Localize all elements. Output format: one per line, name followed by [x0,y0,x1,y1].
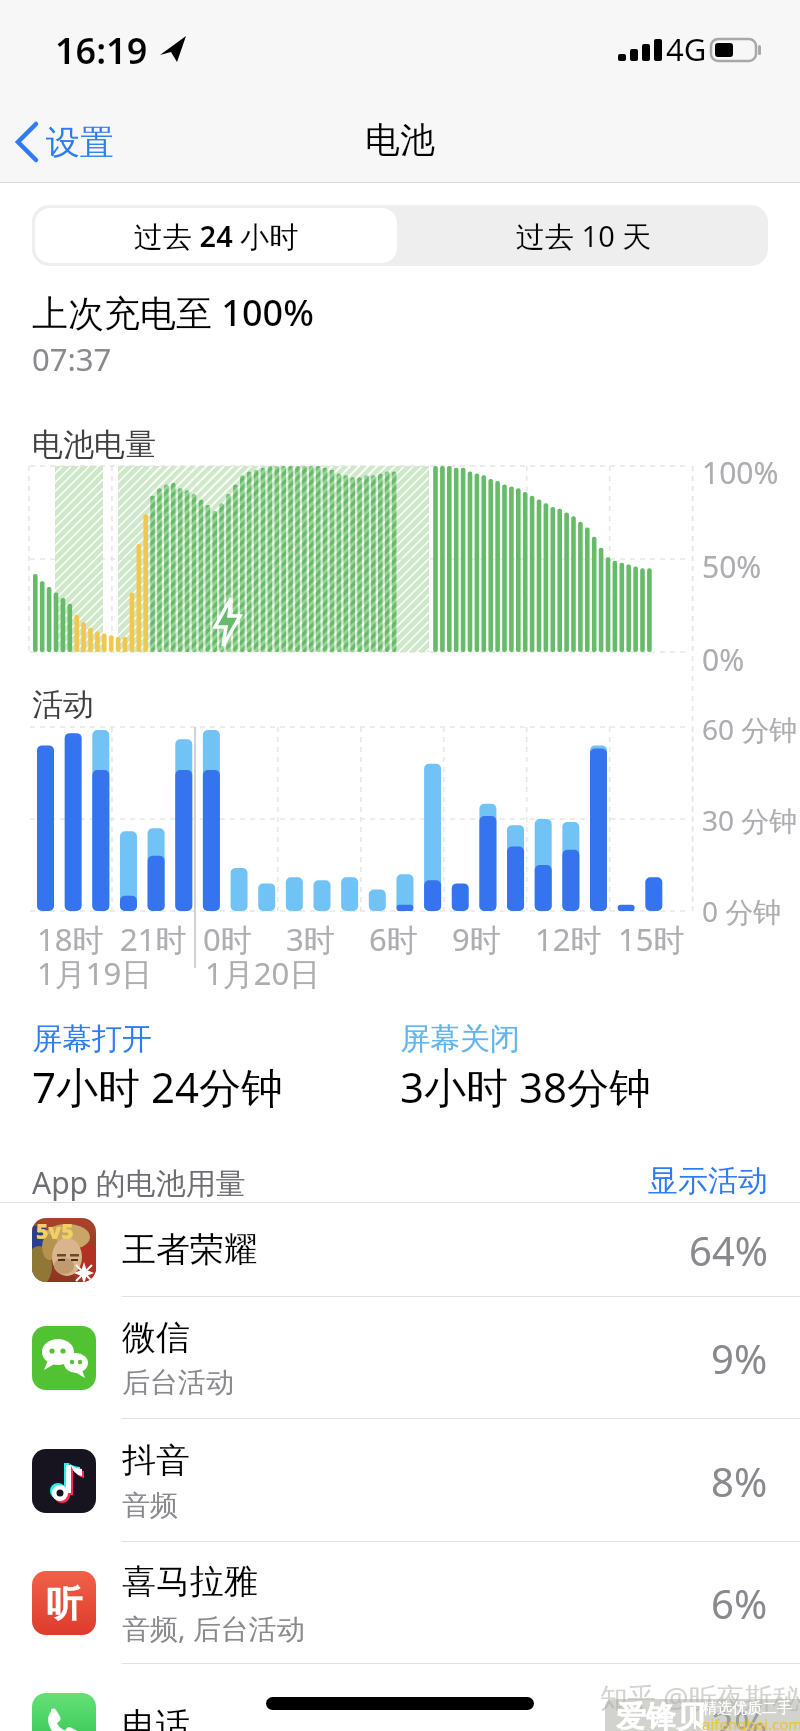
staticText: 3时 [286,918,335,960]
staticText: 60 分钟 [702,710,798,748]
staticText: 21时 [120,918,187,960]
staticText: 4G [666,28,707,70]
staticText: 16:19 [55,26,148,75]
staticText: 07:37 [32,338,112,380]
staticText: 15时 [618,918,685,960]
staticText: 抖音 [122,1439,190,1482]
staticText: 30 分钟 [702,801,798,839]
staticText: 18时 [37,918,104,960]
button[interactable]: 电话 [0,1664,800,1731]
staticText: 6时 [369,918,418,960]
staticText: 微信 [122,1316,190,1359]
staticText: 屏幕关闭 [400,1020,520,1058]
staticText: 0 分钟 [702,892,782,930]
staticText: 爱锋贝 [616,1698,706,1731]
staticText: 电池电量 [32,425,156,464]
staticText: 音频 [122,1488,178,1523]
staticText: 音频, 后台活动 [122,1609,305,1647]
staticText: 64% [689,1223,768,1277]
staticText: 1月20日 [205,952,321,994]
staticText: 50% [702,546,762,587]
staticText: 后台活动 [122,1365,234,1400]
staticText: 3小时 38分钟 [400,1058,651,1115]
staticText: 显示活动 [648,1162,768,1200]
staticText: 王者荣耀 [122,1228,258,1271]
button[interactable]: 显示活动 [368,1162,768,1202]
staticText: App 的电池用量 [32,1162,246,1203]
staticText: 9% [711,1331,768,1385]
staticText: 12时 [535,918,602,960]
staticText: 活动 [32,685,94,724]
staticText: 5v5 [36,1218,74,1246]
staticText: 6% [711,1576,768,1630]
staticText: 知乎 @昕夜斯秘 [600,1678,800,1716]
staticText: 8% [711,1454,768,1508]
button[interactable]: 抖音 [0,1419,800,1542]
staticText: 1月19日 [37,952,153,994]
staticText: 听 [46,1581,82,1626]
staticText: 上次充电至 100% [32,288,314,337]
staticText: 0% [702,639,745,680]
button[interactable]: 过去 10 天 [400,205,768,266]
staticText: 电话 [122,1704,190,1731]
button[interactable]: 过去 24 小时 [35,208,397,263]
staticText: 过去 10 天 [516,216,652,256]
staticText: 过去 24 小时 [134,216,299,256]
button[interactable]: 5v5 [0,1202,800,1297]
staticText: 电池 [365,118,435,162]
button[interactable]: 听 [0,1542,800,1664]
staticText: 9时 [452,918,501,960]
staticText: 设置 [46,121,114,164]
staticText: aifengbei.com [702,1714,800,1731]
staticText: 100% [702,452,779,493]
staticText: 精选优质二手 [702,1699,792,1718]
staticText: 2% [711,1698,768,1731]
staticText: 喜马拉雅 [122,1560,258,1603]
staticText: 7小时 24分钟 [32,1058,283,1115]
button[interactable]: 设置 [10,112,114,172]
staticText: 屏幕打开 [32,1020,152,1058]
button[interactable]: 微信 [0,1297,800,1419]
staticText: 0时 [203,918,252,960]
